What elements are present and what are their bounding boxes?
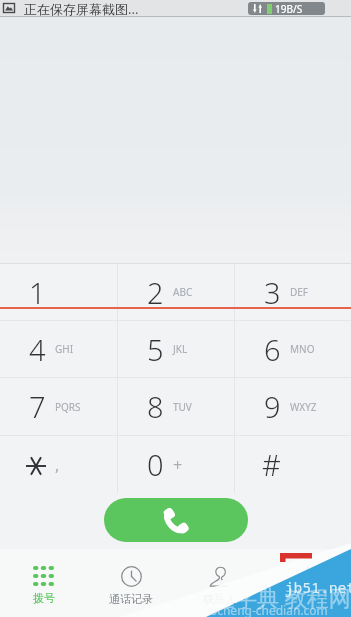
button[interactable]: 1 (0, 264, 117, 320)
button[interactable]: , (0, 436, 117, 493)
staticText: # (262, 445, 281, 484)
staticText: 正在保存屏幕截图... (24, 0, 139, 16)
staticText: + (173, 454, 183, 476)
button[interactable]: 5 (118, 321, 234, 377)
staticText: 5 (147, 330, 164, 369)
button[interactable]: Call (104, 498, 248, 542)
button[interactable]: 0 (118, 436, 234, 493)
button[interactable]: 8 (118, 378, 234, 435)
staticText: 4 (29, 330, 46, 369)
button[interactable]: 9 (235, 378, 351, 435)
button[interactable]: # (235, 436, 351, 493)
button[interactable]: 拨号 (0, 549, 87, 617)
staticText: 收藏 (296, 592, 318, 606)
button[interactable]: 3 (235, 264, 351, 320)
staticText: 19B/S (275, 2, 303, 15)
button[interactable]: 6 (235, 321, 351, 377)
button[interactable]: 联系人 (175, 549, 263, 617)
staticText: MNO (290, 342, 315, 356)
staticText: 2 (147, 273, 164, 312)
staticText: 拨号 (33, 591, 55, 605)
staticText: JKL (173, 342, 188, 356)
button[interactable]: 收藏 (263, 549, 351, 617)
button[interactable]: 7 (0, 378, 117, 435)
staticText: 0 (147, 445, 164, 484)
button[interactable]: 4 (0, 321, 117, 377)
staticText: GHI (55, 342, 74, 356)
staticText: 9 (264, 387, 281, 426)
staticText: 8 (147, 387, 164, 426)
staticText: ABC (173, 285, 193, 299)
staticText: jiaocheng-chedian.com (197, 602, 328, 617)
staticText: 3 (264, 273, 281, 312)
staticText: DEF (290, 285, 309, 299)
staticText: 通话记录 (109, 592, 153, 606)
staticText: 查字典 教程网 之家 (213, 582, 351, 612)
staticText: TUV (173, 400, 192, 414)
staticText: 6 (264, 330, 281, 369)
staticText: , (55, 454, 60, 476)
staticText: PQRS (55, 400, 81, 414)
staticText: 查字典 教程网 之家 (213, 582, 351, 612)
staticText: 1 (29, 273, 46, 312)
button[interactable]: 通话记录 (87, 549, 175, 617)
staticText: WXYZ (290, 400, 317, 414)
staticText: jiaocheng-chedian.com (197, 602, 328, 617)
button[interactable]: 2 (118, 264, 234, 320)
staticText: 7 (29, 387, 46, 426)
staticText: jb51.net (285, 578, 351, 597)
staticText: 联系人 (203, 592, 236, 606)
